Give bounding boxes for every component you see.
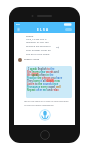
staticText: She learns new words and [27, 70, 60, 73]
staticText: Tap on the word to to hear its pronuncia… [24, 100, 69, 106]
button[interactable]: Voice input [39, 109, 51, 121]
staticText: E L S A [37, 28, 49, 32]
staticText: We speak often in the [27, 73, 55, 76]
staticText: Listen to the sounds once [27, 82, 59, 85]
staticText: Practice the phrase you have [27, 76, 63, 79]
staticText: I speak English to the [27, 67, 56, 70]
button[interactable]: Menu [16, 27, 21, 32]
staticText: They learn it all slowly now [27, 79, 60, 82]
staticText: Pronounce every vowel well [27, 85, 61, 88]
button[interactable]: Play audio [56, 46, 59, 49]
staticText: Speech Coach [24, 58, 40, 61]
staticText: Repeat after me and relax [27, 88, 59, 91]
staticText: Nice, I'll ask you a question or you can… [26, 37, 54, 57]
staticText: 9:41 [16, 23, 21, 26]
staticText: Simon [26, 34, 34, 37]
button[interactable]: Account [65, 28, 72, 31]
